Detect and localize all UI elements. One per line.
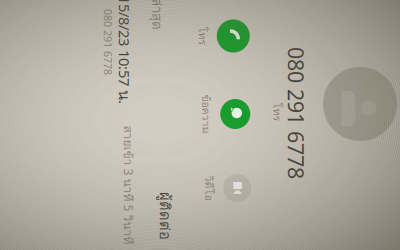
staticText: ผู้ติดต่อ — [267, 149, 315, 171]
button[interactable]: ข้อความ — [169, 75, 208, 127]
button[interactable]: โทร — [94, 75, 127, 131]
staticText: วิดีโอ — [250, 108, 275, 124]
staticText: สายเข้า 3 นาที 5 วินาที — [200, 188, 319, 206]
staticText: 080 291 6778 — [122, 15, 254, 43]
staticText: ข้อความ — [169, 111, 208, 127]
button[interactable]: วิดีโอ — [249, 74, 277, 124]
staticText: 080 291 6778 — [84, 210, 150, 224]
staticText: 15/8/23 10:57 น. — [71, 190, 179, 212]
